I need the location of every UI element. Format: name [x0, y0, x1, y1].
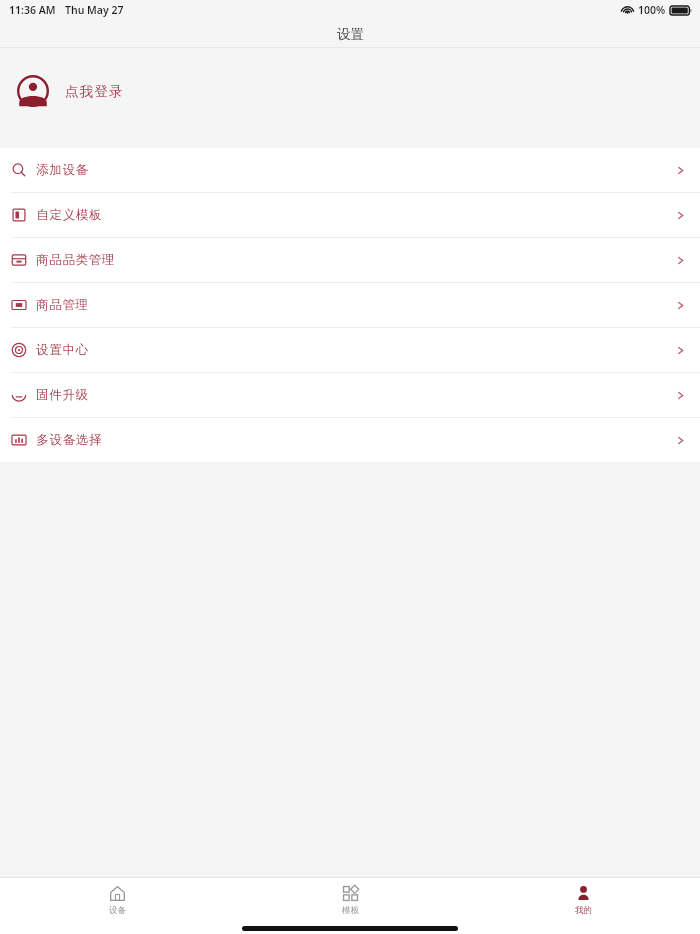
button[interactable]: 模板 [234, 878, 467, 922]
staticText: 11:36 AM [9, 3, 56, 17]
button[interactable]: 添加设备 [0, 148, 700, 192]
staticText: Thu May 27 [65, 3, 124, 17]
button[interactable]: 我的 [467, 878, 700, 922]
staticText: 设置中心 [36, 342, 89, 358]
staticText: 设置 [337, 26, 364, 43]
button[interactable]: 商品管理 [0, 283, 700, 327]
staticText: 设备 [109, 905, 126, 916]
button[interactable]: 自定义模板 [0, 193, 700, 237]
staticText: 我的 [575, 905, 592, 916]
staticText: 100% [638, 3, 666, 17]
staticText: 自定义模板 [36, 207, 102, 223]
staticText: 添加设备 [36, 162, 89, 178]
staticText: 点我登录 [65, 83, 124, 100]
button[interactable]: 点我登录 [0, 60, 700, 122]
staticText: 固件升级 [36, 387, 89, 403]
staticText: 模板 [342, 905, 359, 916]
button[interactable]: 设备 [0, 878, 234, 922]
button[interactable]: 设置中心 [0, 328, 700, 372]
staticText: 多设备选择 [36, 432, 102, 448]
staticText: 商品品类管理 [36, 252, 116, 268]
button[interactable]: 多设备选择 [0, 418, 700, 462]
button[interactable]: 商品品类管理 [0, 238, 700, 282]
staticText: 商品管理 [36, 297, 89, 313]
button[interactable]: 固件升级 [0, 373, 700, 417]
